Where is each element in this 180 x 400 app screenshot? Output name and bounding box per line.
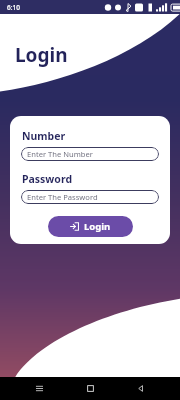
staticText: Number — [22, 129, 66, 143]
staticText: 6:10 — [7, 3, 20, 12]
button[interactable]: Login — [48, 216, 133, 237]
button[interactable]: Enter The Number — [21, 147, 159, 161]
staticText: Enter The Password — [27, 192, 98, 202]
staticText: Login — [15, 42, 68, 68]
staticText: Password — [22, 172, 73, 186]
button[interactable]: Back — [129, 377, 152, 400]
staticText: Login — [84, 220, 111, 233]
button[interactable]: Recent apps — [28, 377, 51, 400]
button[interactable]: Enter The Password — [21, 190, 159, 204]
button[interactable]: Home — [79, 377, 102, 400]
staticText: Enter The Number — [27, 149, 93, 159]
